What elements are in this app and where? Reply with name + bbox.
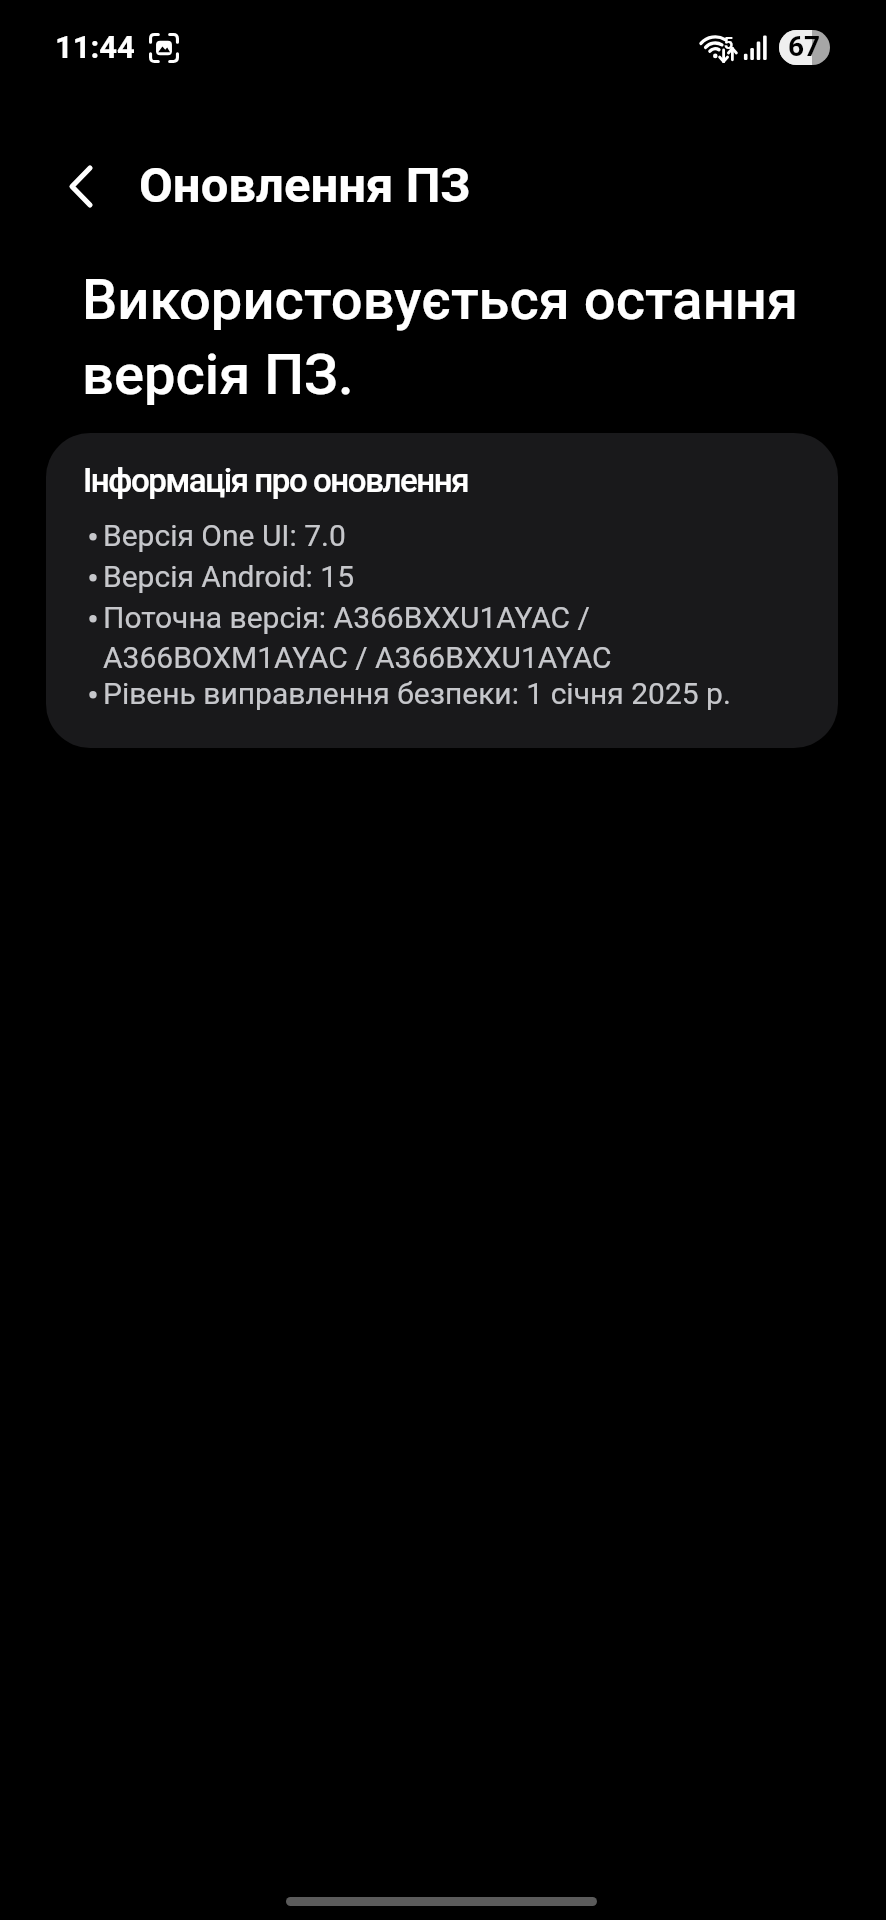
button[interactable]: Back [49, 154, 113, 218]
staticText: Рівень виправлення безпеки: 1 січня 2025… [103, 676, 731, 711]
staticText: Інформація про оновлення [83, 461, 469, 500]
staticText: Версія One UI: 7.0 [103, 518, 346, 553]
staticText: Оновлення ПЗ [139, 157, 471, 214]
staticText: 11:44 [55, 29, 135, 65]
staticText: Використовується остання версія ПЗ. [82, 267, 862, 408]
staticText: 5 [724, 34, 734, 53]
staticText: Поточна версія: A366BXXU1AYAC / A366BOXM… [103, 600, 784, 676]
staticText: 67 [788, 30, 821, 63]
staticText: Версія Android: 15 [103, 559, 355, 594]
